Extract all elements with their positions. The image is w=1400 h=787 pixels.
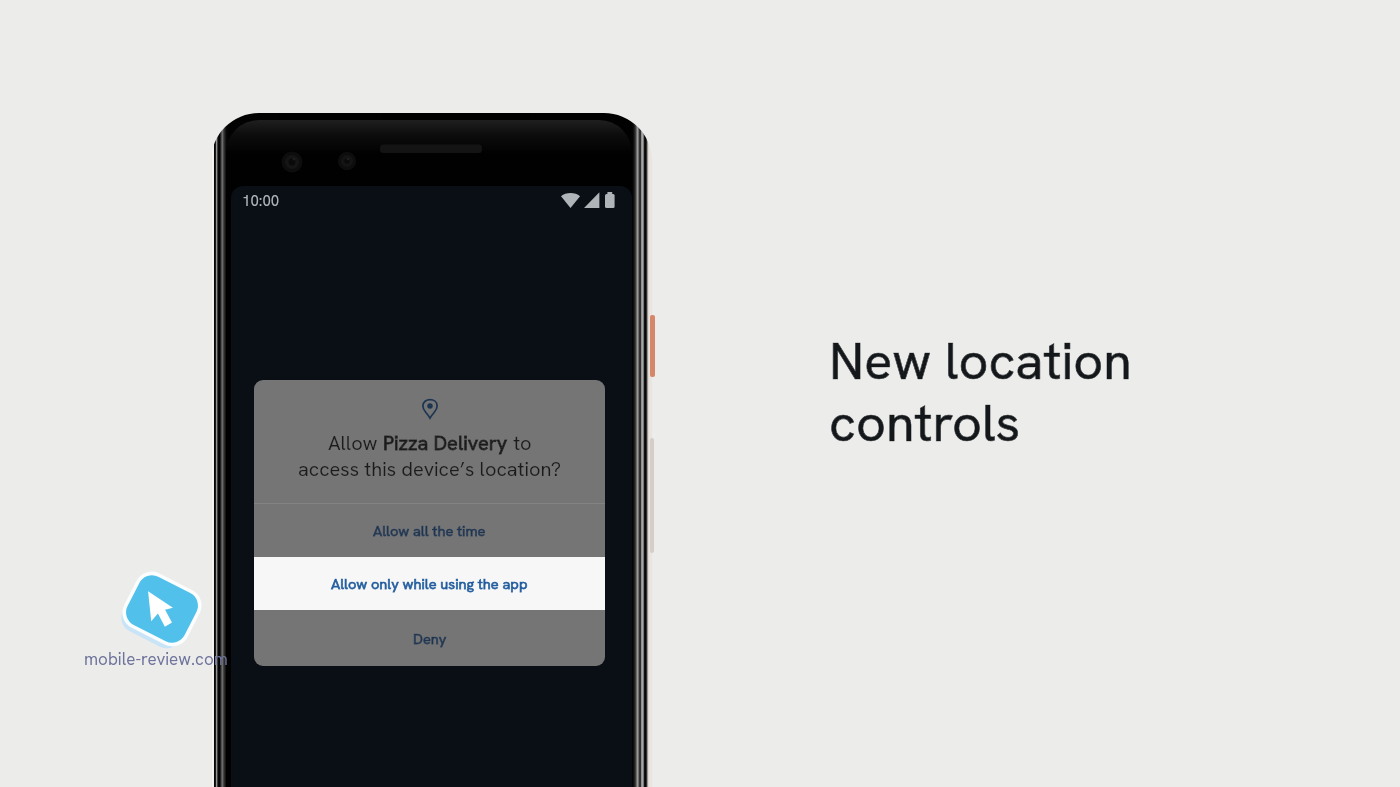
staticText: Deny — [413, 629, 447, 648]
staticText: controls — [829, 389, 1021, 457]
staticText: Pizza Delivery — [383, 430, 508, 456]
button[interactable]: Deny — [254, 610, 605, 666]
staticText: Allow only while using the app — [331, 574, 528, 593]
staticText: New location — [829, 327, 1132, 395]
button[interactable]: Power button — [650, 315, 655, 377]
button[interactable]: Allow all the time — [254, 504, 605, 557]
staticText: Allow all the time — [373, 521, 486, 540]
staticText: 10:00 — [242, 191, 280, 211]
button[interactable]: Allow only while using the app — [254, 557, 605, 610]
staticText: Deny — [413, 629, 447, 648]
staticText: to — [508, 430, 532, 456]
staticText: Allow — [328, 430, 383, 456]
staticText: access this device’s location? — [298, 456, 561, 482]
staticText: Allow only while using the app — [331, 574, 528, 593]
staticText: Pizza Delivery — [383, 430, 508, 456]
other: Location — [422, 398, 438, 419]
staticText: New location — [829, 327, 1132, 395]
staticText: Allow all the time — [373, 521, 486, 540]
staticText: mobile-review.com — [84, 648, 228, 670]
staticText: controls — [829, 389, 1021, 457]
